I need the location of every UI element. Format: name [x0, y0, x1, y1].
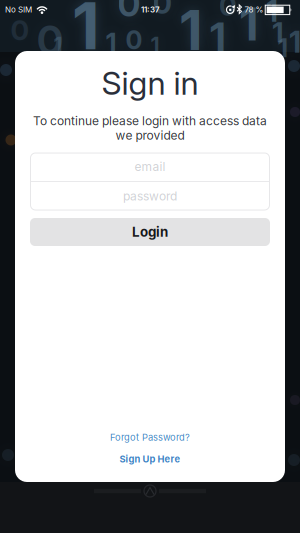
staticText: 1: [277, 33, 288, 63]
staticText: password: [123, 189, 177, 203]
staticText: Sign Up Here: [119, 453, 180, 464]
staticText: 1: [72, 0, 100, 64]
staticText: 0: [219, 0, 237, 22]
button[interactable]: Forgot Password?: [110, 432, 190, 443]
staticText: 1: [210, 13, 226, 61]
staticText: 0: [117, 0, 140, 24]
staticText: 0: [10, 13, 29, 46]
staticText: Login: [132, 224, 168, 240]
staticText: 1: [272, 15, 284, 48]
staticText: 1: [179, 0, 203, 62]
staticText: email: [134, 160, 165, 174]
staticText: 1: [289, 25, 300, 59]
staticText: Sign in: [101, 64, 198, 102]
staticText: 0: [125, 25, 142, 55]
staticText: To continue please login with access dat…: [33, 114, 267, 128]
staticText: 1: [105, 27, 116, 59]
staticText: 0: [37, 16, 63, 64]
staticText: we provided: [115, 128, 184, 143]
staticText: 1: [239, 0, 259, 51]
staticText: 0: [152, 0, 171, 20]
staticText: 78 %: [244, 5, 263, 14]
staticText: 11:37: [141, 5, 160, 14]
button[interactable]: password: [30, 182, 270, 210]
button[interactable]: Login: [30, 218, 270, 246]
button[interactable]: Sign Up Here: [119, 453, 180, 464]
staticText: 1: [150, 32, 159, 58]
staticText: 1: [266, 0, 278, 28]
button[interactable]: email: [30, 152, 270, 181]
staticText: Forgot Password?: [110, 432, 190, 443]
staticText: No SIM: [5, 5, 32, 14]
staticText: 1: [53, 32, 62, 58]
